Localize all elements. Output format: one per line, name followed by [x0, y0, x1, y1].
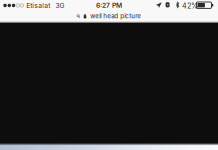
staticText: Etisalat — [26, 1, 50, 10]
staticText: 3G — [56, 1, 65, 10]
staticText: well head picture — [90, 12, 141, 20]
button[interactable]: Address and search — [0, 11, 218, 22]
staticText: 42% — [182, 1, 198, 10]
staticText: 6:27 PM — [96, 1, 122, 9]
